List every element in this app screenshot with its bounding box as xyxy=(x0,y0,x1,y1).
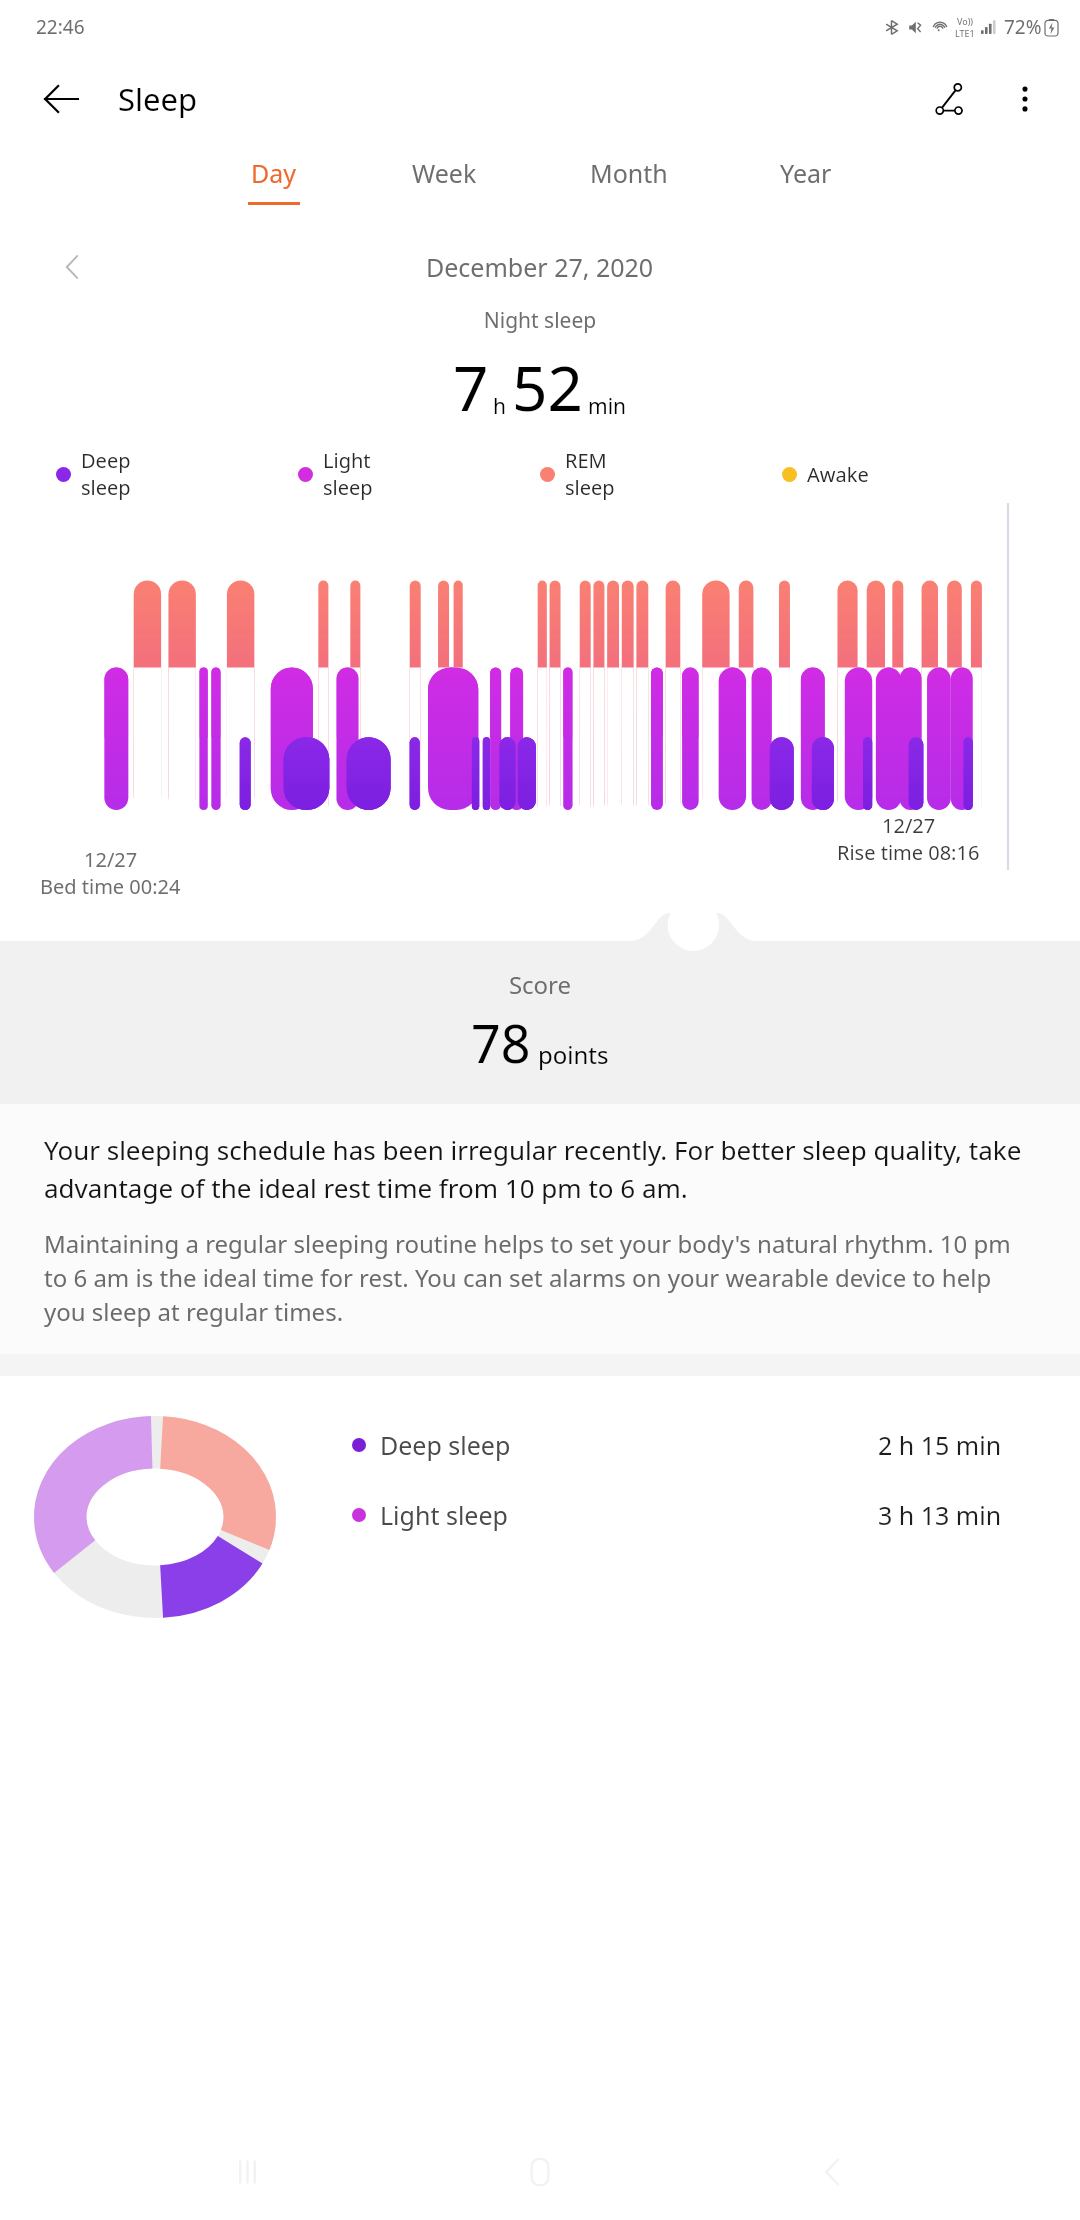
staticText: Week xyxy=(412,156,477,190)
staticText: REM xyxy=(565,447,607,474)
staticText: Light sleep xyxy=(380,1498,508,1532)
button[interactable]: Share xyxy=(914,62,988,136)
staticText: 3 h 13 min xyxy=(878,1498,1002,1532)
staticText: December 27, 2020 xyxy=(426,250,654,284)
staticText: 12/27 xyxy=(84,846,138,873)
button[interactable]: Back xyxy=(30,68,92,130)
staticText: Year xyxy=(780,156,832,190)
staticText: points xyxy=(538,1038,609,1071)
staticText: 12/27 xyxy=(882,812,936,839)
staticText: 7 xyxy=(453,345,489,429)
staticText: sleep xyxy=(323,474,373,501)
staticText: Month xyxy=(590,156,668,190)
staticText: Sleep xyxy=(118,78,198,120)
button[interactable]: Deep xyxy=(56,447,298,501)
staticText: 72% xyxy=(1004,14,1042,40)
staticText: Vo)) xyxy=(957,15,974,27)
button[interactable]: Deep sleep xyxy=(352,1428,1042,1462)
button[interactable]: REM xyxy=(540,447,782,501)
staticText: 52 xyxy=(512,345,583,429)
staticText: Awake xyxy=(807,461,869,488)
staticText: Your sleeping schedule has been irregula… xyxy=(44,1132,1036,1205)
button[interactable]: Previous day xyxy=(48,242,98,292)
button[interactable]: Awake xyxy=(782,461,1024,488)
staticText: sleep xyxy=(81,474,131,501)
button[interactable]: Light sleep xyxy=(352,1498,1042,1532)
button[interactable]: Week xyxy=(412,144,477,222)
button[interactable]: Year xyxy=(780,144,832,222)
staticText: LTE1 xyxy=(955,27,975,39)
staticText: Night sleep xyxy=(0,306,1080,335)
staticText: Light xyxy=(323,447,371,474)
staticText: min xyxy=(588,392,627,421)
staticText: Deep xyxy=(81,447,131,474)
staticText: Day xyxy=(251,156,297,190)
button[interactable]: Light xyxy=(298,447,540,501)
staticText: Rise time 08:16 xyxy=(837,839,980,866)
button[interactable]: Day xyxy=(248,144,300,222)
staticText: Maintaining a regular sleeping routine h… xyxy=(44,1227,1036,1328)
staticText: Bed time 00:24 xyxy=(40,873,181,900)
staticText: Score xyxy=(0,968,1080,1001)
staticText: Deep sleep xyxy=(380,1428,511,1462)
staticText: 2 h 15 min xyxy=(878,1428,1002,1462)
button[interactable]: Month xyxy=(590,144,668,222)
staticText: 78 xyxy=(471,1007,531,1078)
button[interactable]: More options xyxy=(988,62,1062,136)
staticText: h xyxy=(493,392,506,421)
staticText: 22:46 xyxy=(36,14,85,40)
staticText: sleep xyxy=(565,474,615,501)
